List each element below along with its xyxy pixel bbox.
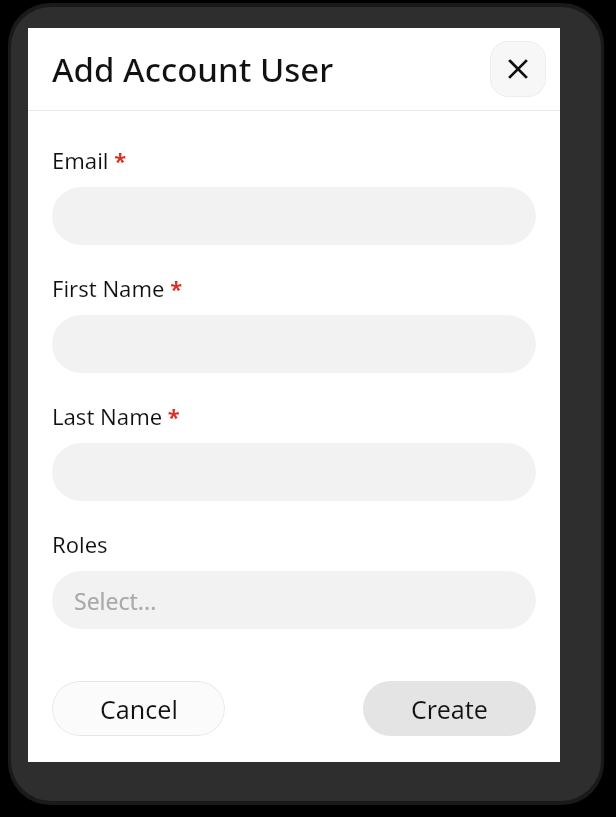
button[interactable]: Close [490,41,546,97]
staticText: Roles [52,529,108,559]
staticText: Add Account User [52,47,334,92]
staticText: Email * [52,145,127,175]
button[interactable]: Create [363,681,536,736]
button[interactable]: Cancel [52,681,225,736]
button[interactable]: Roles [52,571,536,629]
staticText: Select... [74,585,157,616]
staticText: Last Name * [52,401,180,431]
staticText: Create [411,692,488,726]
staticText: Cancel [100,692,178,726]
staticText: First Name * [52,273,183,303]
